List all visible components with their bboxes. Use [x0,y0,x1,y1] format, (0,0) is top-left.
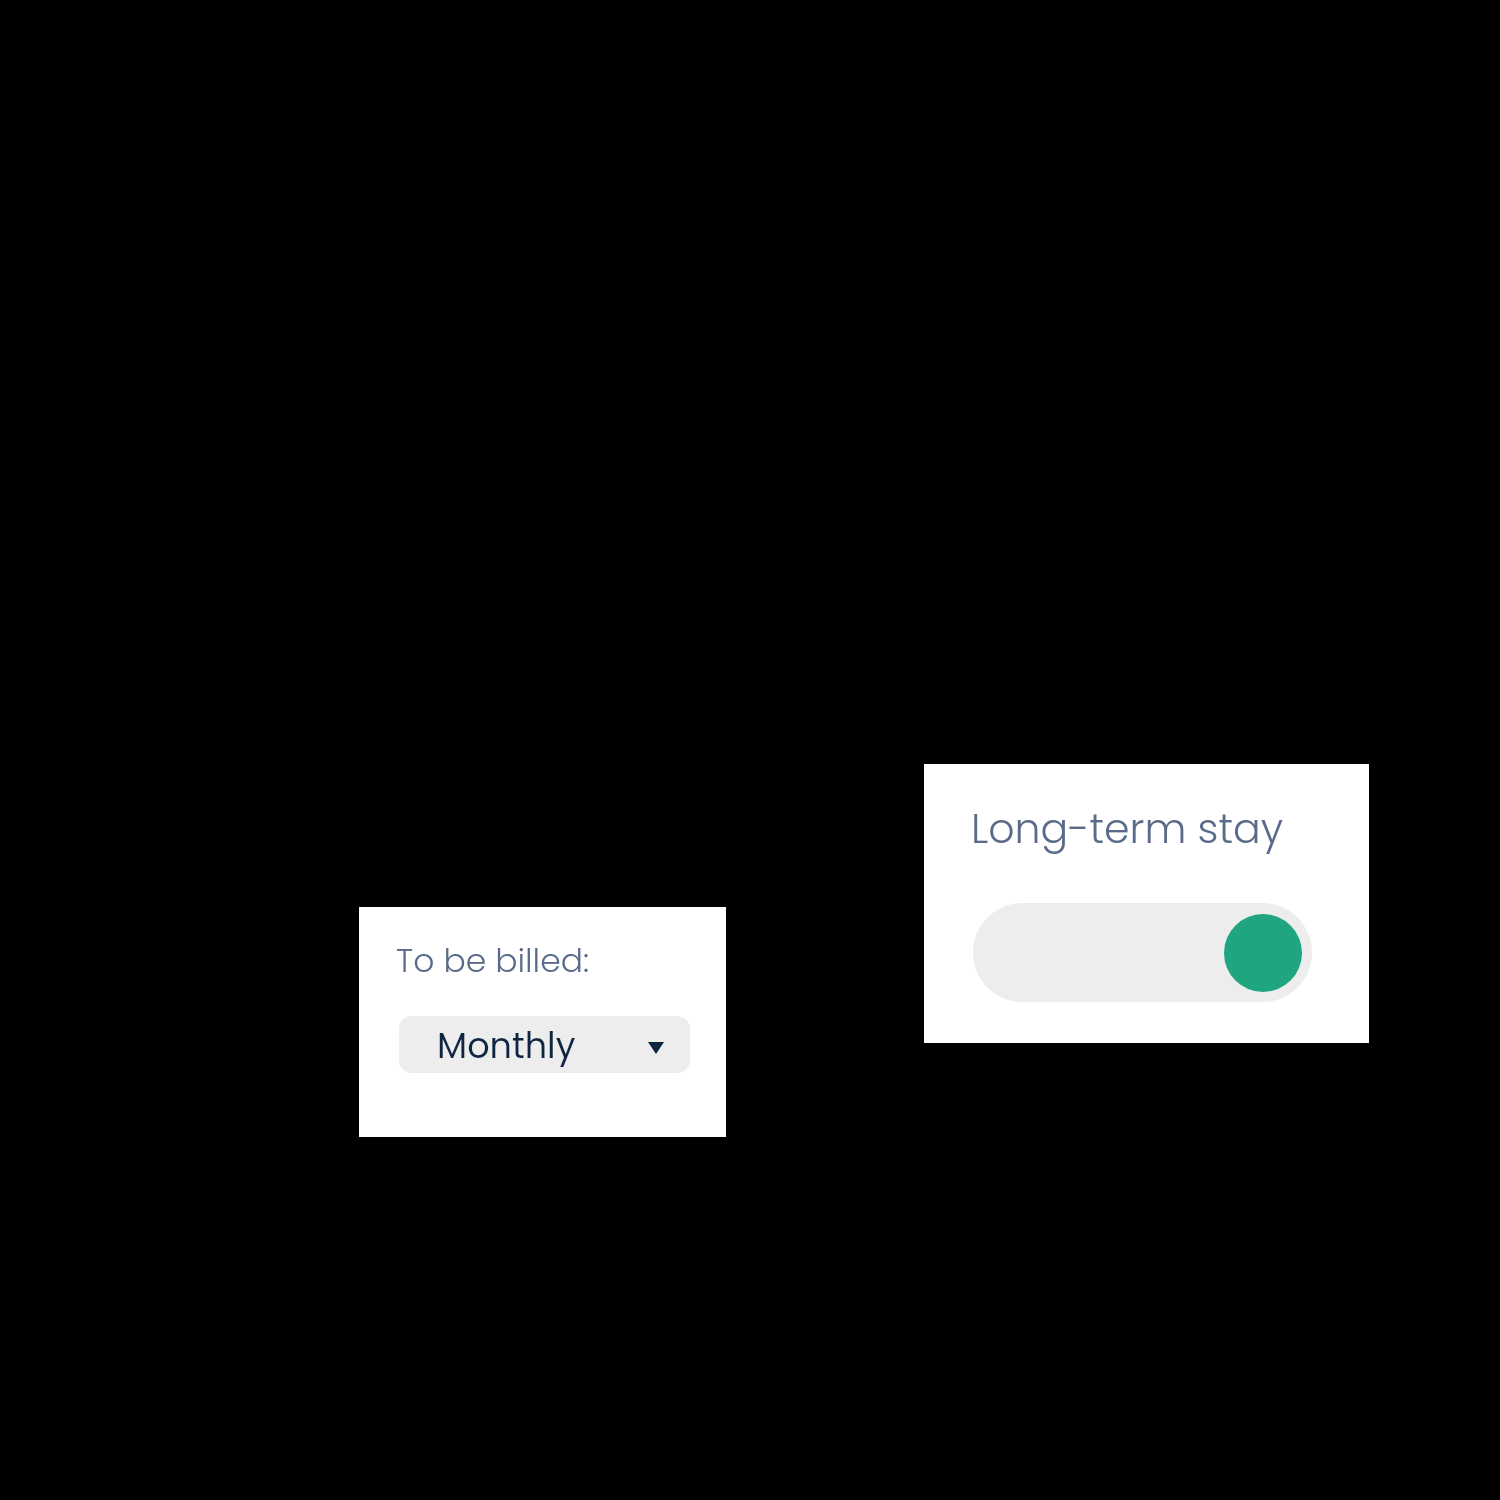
staticText: To be billed: [396,937,590,983]
button[interactable]: Long-term stay, on [973,903,1312,1002]
button[interactable]: Billing frequency: Monthly [399,1016,690,1073]
staticText: Monthly [437,1021,576,1070]
staticText: Long-term stay [971,800,1284,857]
